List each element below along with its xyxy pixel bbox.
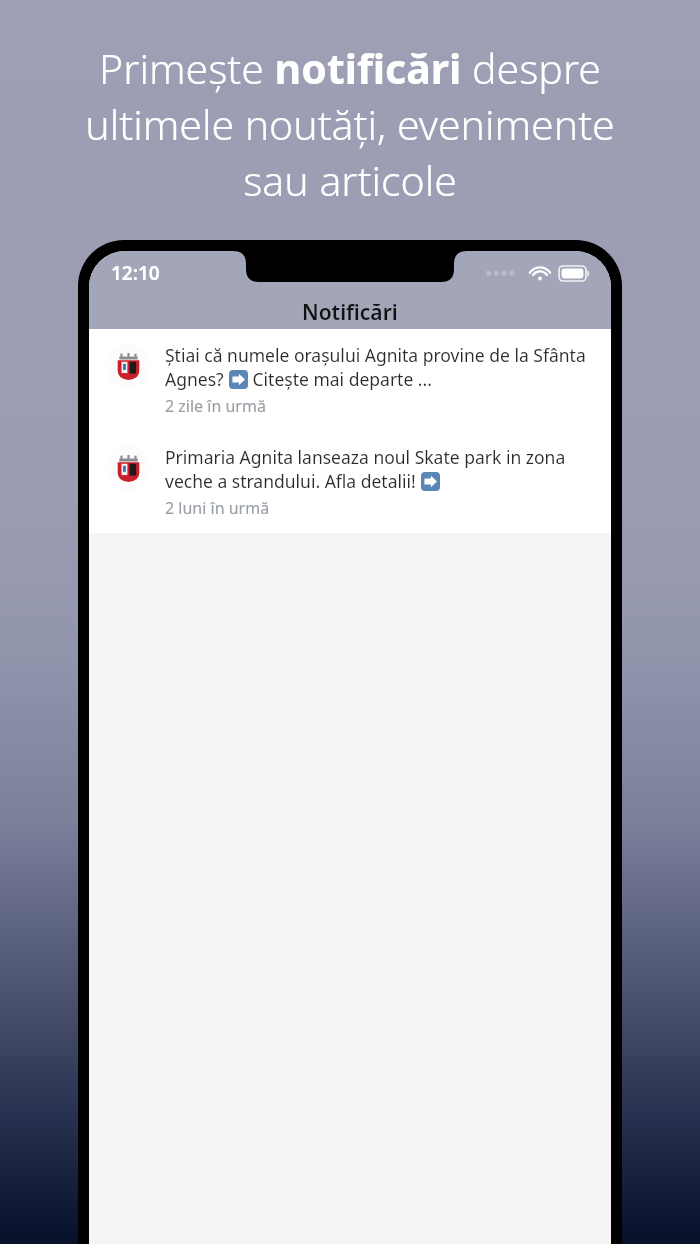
staticText: Știai că numele orașului Agnita provine … <box>165 343 586 367</box>
staticText: veche a strandului. Afla detalii! <box>165 469 421 493</box>
staticText: 2 luni în urmă <box>165 497 270 519</box>
staticText: Primește notificări despre ultimele nout… <box>48 40 652 208</box>
staticText: Notificări <box>302 298 398 327</box>
staticText: Agnes? <box>165 367 229 391</box>
staticText: Primaria Agnita lanseaza noul Skate park… <box>165 445 566 469</box>
staticText: Citește mai departe ... <box>248 367 432 391</box>
staticText: 12:10 <box>111 260 160 286</box>
staticText: 2 zile în urmă <box>165 395 266 417</box>
button[interactable]: Știai că numele orașului Agnita provine … <box>89 329 611 431</box>
button[interactable]: Primaria Agnita lanseaza noul Skate park… <box>89 431 611 533</box>
